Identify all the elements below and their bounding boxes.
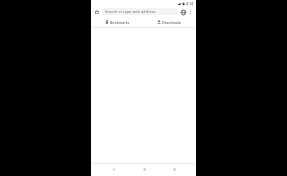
button[interactable]: Bookmarks (91, 17, 143, 27)
staticText: Downloads (162, 20, 182, 25)
staticText: Bookmarks (110, 20, 130, 25)
button[interactable]: Home (136, 163, 152, 176)
button[interactable]: Reload (179, 8, 187, 16)
button[interactable]: Search or type web address (102, 8, 178, 15)
button[interactable]: More options (187, 8, 194, 15)
staticText: Search or type web address (105, 9, 156, 14)
button[interactable]: Back (105, 163, 121, 176)
staticText: 4:14 (186, 1, 194, 6)
button[interactable]: Recent apps (166, 163, 182, 176)
button[interactable]: Home (93, 8, 101, 16)
button[interactable]: Downloads (143, 17, 196, 27)
